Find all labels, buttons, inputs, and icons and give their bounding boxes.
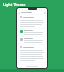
button[interactable] xyxy=(19,37,45,44)
button[interactable] xyxy=(19,29,45,36)
staticText: Light Theme xyxy=(3,2,26,7)
other: Menu xyxy=(18,12,20,14)
button[interactable]: Menu xyxy=(17,11,47,14)
button[interactable] xyxy=(19,15,45,28)
button[interactable] xyxy=(19,45,45,62)
